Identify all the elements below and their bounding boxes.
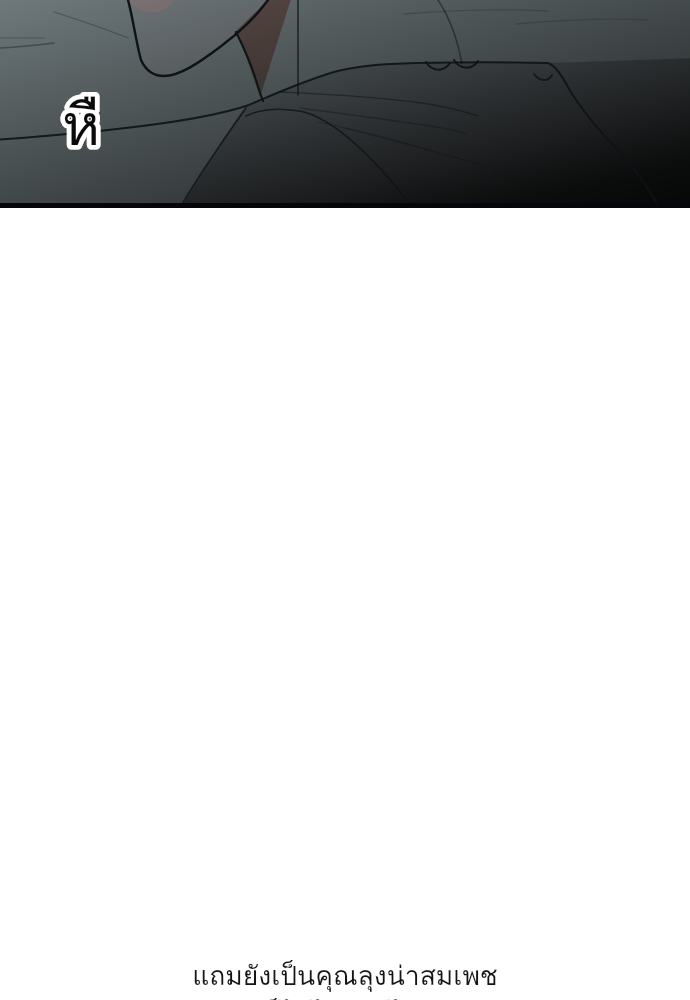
staticText: หื [62, 78, 101, 170]
staticText: แถมยังเป็นคุณลุงน่าสมเพช เเล้วก็ไม่ได้มี… [0, 955, 690, 1000]
staticText: หื [62, 78, 101, 170]
